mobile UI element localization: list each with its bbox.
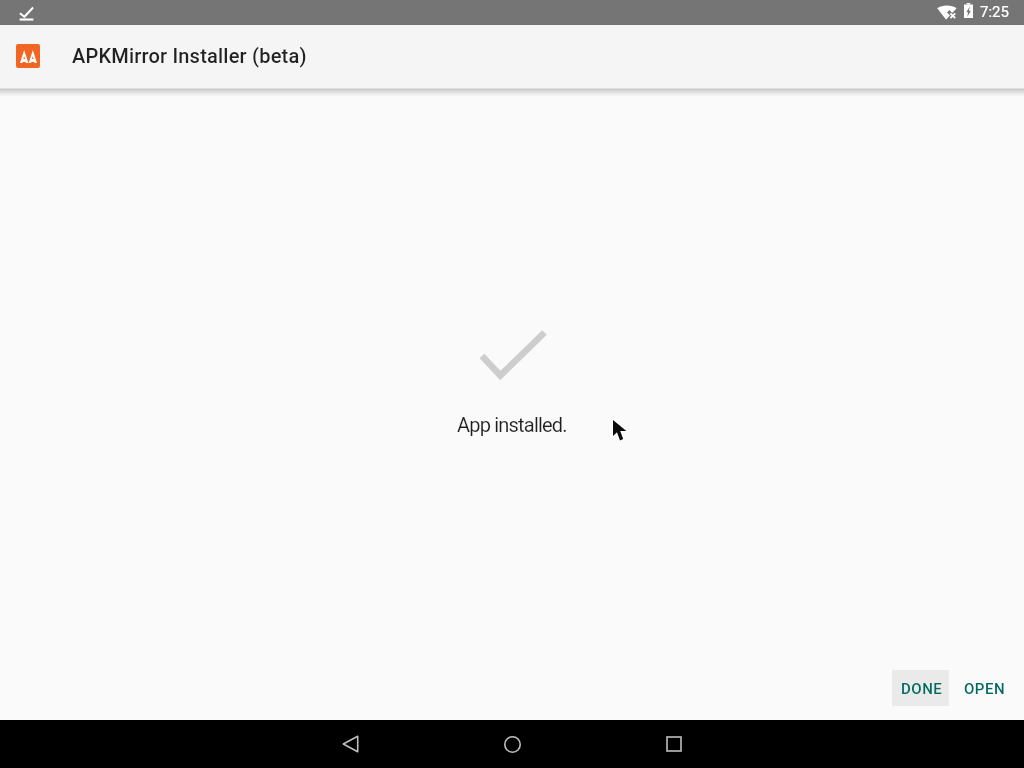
button[interactable]: DONE <box>892 670 949 706</box>
staticText: DONE <box>901 680 943 698</box>
button[interactable]: Recents <box>626 720 722 768</box>
staticText: App installed. <box>457 413 567 436</box>
staticText: OPEN <box>964 680 1006 698</box>
staticText: APKMirror Installer (beta) <box>72 44 307 67</box>
button[interactable]: Back <box>302 720 398 768</box>
button[interactable]: Home <box>464 720 560 768</box>
staticText: 7:25 <box>980 3 1009 21</box>
button[interactable]: OPEN <box>955 670 1013 705</box>
